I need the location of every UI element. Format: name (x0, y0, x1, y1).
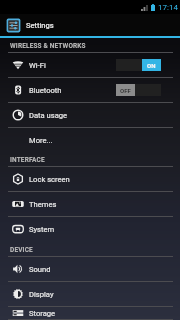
staticText: Bluetooth (29, 86, 62, 95)
staticText: Wi-Fi (29, 61, 46, 70)
staticText: 17:14 (158, 3, 178, 12)
staticText: OFF (120, 87, 131, 94)
button[interactable]: Wi-Fi switch (116, 59, 161, 71)
staticText: Themes (29, 200, 57, 209)
staticText: More... (29, 136, 53, 145)
button[interactable]: Data usage (0, 103, 180, 128)
button[interactable]: Display (0, 282, 180, 307)
staticText: Lock screen (29, 175, 70, 184)
staticText: WIRELESS & NETWORKS (10, 42, 86, 50)
staticText: INTERFACE (10, 156, 45, 164)
button[interactable]: Wi-Fi (0, 53, 180, 78)
staticText: ON (147, 62, 156, 69)
button[interactable]: Bluetooth (0, 78, 180, 103)
button[interactable]: More... (0, 128, 180, 153)
staticText: DEVICE (10, 246, 33, 254)
button[interactable]: Sound (0, 257, 180, 282)
staticText: Data usage (29, 111, 68, 120)
button[interactable]: Storage (0, 307, 180, 320)
button[interactable]: Lock screen (0, 167, 180, 192)
staticText: Settings (26, 21, 54, 30)
button[interactable]: Bluetooth switch (116, 84, 161, 96)
button[interactable]: Themes (0, 192, 180, 217)
staticText: System (29, 225, 55, 234)
button[interactable]: System (0, 217, 180, 242)
staticText: Display (29, 290, 54, 299)
staticText: Storage (29, 309, 56, 318)
button[interactable]: Settings (6, 14, 180, 36)
staticText: Sound (29, 265, 51, 274)
